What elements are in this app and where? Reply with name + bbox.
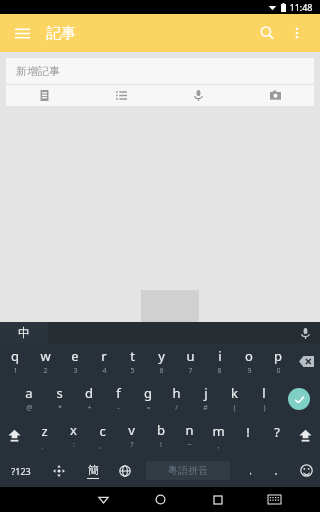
button[interactable]: Emoji	[292, 454, 320, 487]
staticText: 5	[130, 366, 135, 376]
staticText: 2	[43, 366, 48, 376]
button[interactable]: g	[133, 380, 162, 417]
button[interactable]: t	[118, 343, 147, 380]
button[interactable]: z	[29, 417, 59, 454]
button[interactable]: c	[88, 417, 117, 454]
staticText: 11:48	[289, 1, 313, 13]
staticText: 0	[276, 366, 281, 376]
button[interactable]: Switch keyboard	[246, 487, 303, 512]
button[interactable]: Photo note	[237, 85, 314, 106]
staticText: /	[175, 403, 178, 413]
button[interactable]: Voice input	[298, 326, 312, 340]
button[interactable]: Back	[75, 487, 132, 512]
button[interactable]: h	[162, 380, 191, 417]
staticText: b	[157, 421, 165, 439]
button[interactable]: Input language	[0, 322, 48, 343]
staticText: j	[204, 384, 208, 402]
staticText: t	[130, 347, 135, 365]
staticText: x	[70, 421, 77, 439]
button[interactable]: Enter	[278, 380, 320, 417]
button[interactable]: Shift	[291, 417, 320, 454]
staticText: =	[146, 403, 151, 413]
button[interactable]: Change keyboard	[110, 454, 140, 487]
button[interactable]: w	[30, 343, 60, 380]
button[interactable]: 粵語拼音	[146, 461, 230, 480]
staticText: 7	[188, 366, 193, 376]
button[interactable]: ?	[262, 417, 291, 454]
button[interactable]: 簡	[76, 454, 110, 487]
staticText: -	[117, 403, 120, 413]
button[interactable]: More options	[284, 20, 310, 46]
staticText: 、	[41, 441, 48, 450]
button[interactable]: a	[14, 380, 44, 417]
staticText: o	[245, 347, 253, 365]
staticText: !	[160, 440, 162, 450]
staticText: s	[56, 384, 63, 402]
button[interactable]: 新增記事	[6, 58, 314, 84]
staticText: 8	[217, 366, 222, 376]
button[interactable]: ?123	[0, 454, 42, 487]
button[interactable]: j	[191, 380, 220, 417]
staticText: v	[128, 421, 135, 439]
staticText: r	[101, 347, 107, 365]
button[interactable]: x	[59, 417, 88, 454]
button[interactable]: m	[204, 417, 233, 454]
staticText: 。	[274, 465, 283, 476]
staticText: 新增記事	[16, 64, 60, 78]
button[interactable]: u	[176, 343, 205, 380]
button[interactable]: Checklist note	[6, 85, 83, 106]
button[interactable]: s	[44, 380, 74, 417]
button[interactable]: n	[175, 417, 204, 454]
staticText: 6	[159, 366, 164, 376]
staticText: 粵語拼音	[168, 464, 208, 477]
button[interactable]: Open navigation drawer	[10, 21, 34, 45]
button[interactable]: Home	[132, 487, 189, 512]
button[interactable]: p	[263, 343, 292, 380]
button[interactable]: Search	[254, 20, 280, 46]
staticText: 簡	[88, 463, 99, 477]
staticText: m	[212, 422, 225, 440]
staticText: ，	[246, 465, 255, 476]
button[interactable]: Move cursor	[42, 454, 76, 487]
button[interactable]: Recents	[189, 487, 246, 512]
button[interactable]: Shift	[0, 417, 29, 454]
button[interactable]: r	[89, 343, 118, 380]
button[interactable]: b	[146, 417, 175, 454]
button[interactable]: 。	[264, 454, 292, 487]
button[interactable]: o	[234, 343, 263, 380]
button[interactable]: e	[60, 343, 89, 380]
button[interactable]: f	[104, 380, 133, 417]
staticText: !	[246, 423, 250, 441]
staticText: 4	[102, 366, 107, 376]
button[interactable]: k	[220, 380, 249, 417]
staticText: 記事	[46, 24, 76, 43]
staticText: ?	[274, 423, 280, 441]
button[interactable]: !	[233, 417, 262, 454]
button[interactable]: l	[249, 380, 278, 417]
staticText: h	[172, 384, 181, 402]
staticText: 中	[18, 325, 30, 340]
button[interactable]: v	[117, 417, 146, 454]
staticText: w	[40, 347, 51, 365]
button[interactable]: q	[0, 343, 30, 380]
staticText: +	[87, 403, 92, 413]
button[interactable]: Backspace	[292, 343, 320, 380]
staticText: @	[26, 403, 33, 413]
staticText: ?123	[11, 465, 31, 477]
staticText: p	[274, 347, 282, 365]
button[interactable]: y	[147, 343, 176, 380]
staticText: u	[186, 347, 195, 365]
button[interactable]: Voice note	[160, 85, 237, 106]
staticText: l	[262, 384, 266, 402]
staticText: i	[218, 347, 222, 365]
staticText: 3	[73, 366, 78, 376]
staticText: c	[99, 422, 106, 440]
button[interactable]: d	[74, 380, 104, 417]
staticText: g	[144, 384, 152, 402]
button[interactable]: i	[205, 343, 234, 380]
staticText: k	[231, 384, 238, 402]
button[interactable]: ，	[236, 454, 264, 487]
button[interactable]: List	[83, 85, 160, 106]
staticText: e	[71, 347, 79, 365]
staticText: q	[11, 347, 19, 365]
